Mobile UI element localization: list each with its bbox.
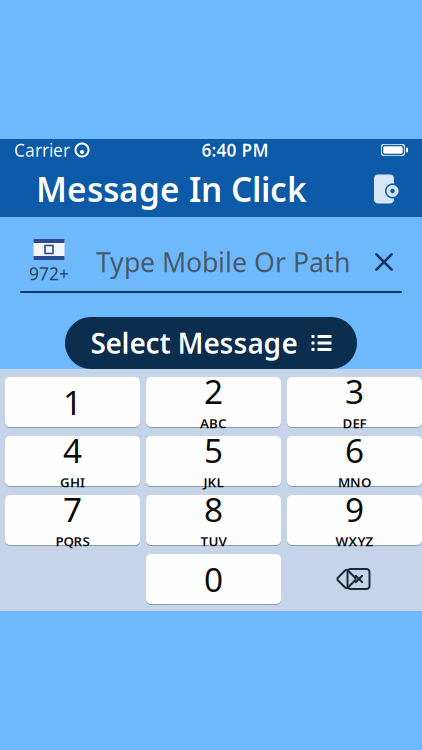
staticText: DEF	[342, 414, 366, 432]
button[interactable]: 0	[146, 553, 281, 605]
staticText: 7	[63, 487, 82, 531]
staticText: WXYZ	[335, 532, 373, 550]
staticText: 972+	[29, 262, 69, 285]
staticText: PQRS	[55, 532, 89, 550]
staticText: Select Message	[90, 324, 297, 362]
staticText: 8	[204, 487, 223, 531]
button[interactable]: 8	[146, 494, 281, 546]
staticText: 3	[345, 369, 364, 413]
staticText: TUV	[200, 532, 226, 550]
button[interactable]: 2	[146, 376, 281, 428]
button[interactable]: Country code	[16, 239, 82, 285]
button[interactable]: 3	[287, 376, 422, 428]
staticText: 9	[345, 487, 364, 531]
staticText: 2	[204, 369, 223, 413]
button[interactable]: 5	[146, 435, 281, 487]
staticText: 4	[63, 428, 82, 472]
staticText: GHI	[60, 473, 85, 491]
staticText: 6	[345, 428, 364, 472]
button[interactable]: Settings	[362, 167, 406, 211]
staticText: Message In Click	[36, 167, 307, 211]
staticText: JKL	[203, 473, 223, 491]
button[interactable]: Clear	[362, 240, 406, 284]
button[interactable]: 6	[287, 435, 422, 487]
button[interactable]: 4	[5, 435, 140, 487]
staticText: ABC	[200, 414, 227, 432]
staticText: 5	[204, 428, 223, 472]
staticText: 1	[63, 380, 82, 424]
button[interactable]: 9	[287, 494, 422, 546]
staticText: Type Mobile Or Path	[96, 244, 350, 280]
staticText: 0	[204, 557, 223, 601]
button[interactable]: Select Message	[65, 317, 357, 369]
button[interactable]: Delete	[287, 554, 422, 604]
staticText: 6:40 PM	[201, 138, 268, 161]
button[interactable]: 7	[5, 494, 140, 546]
staticText: MNO	[338, 473, 371, 491]
button[interactable]: 1	[5, 376, 140, 428]
staticText: Carrier	[14, 138, 70, 161]
